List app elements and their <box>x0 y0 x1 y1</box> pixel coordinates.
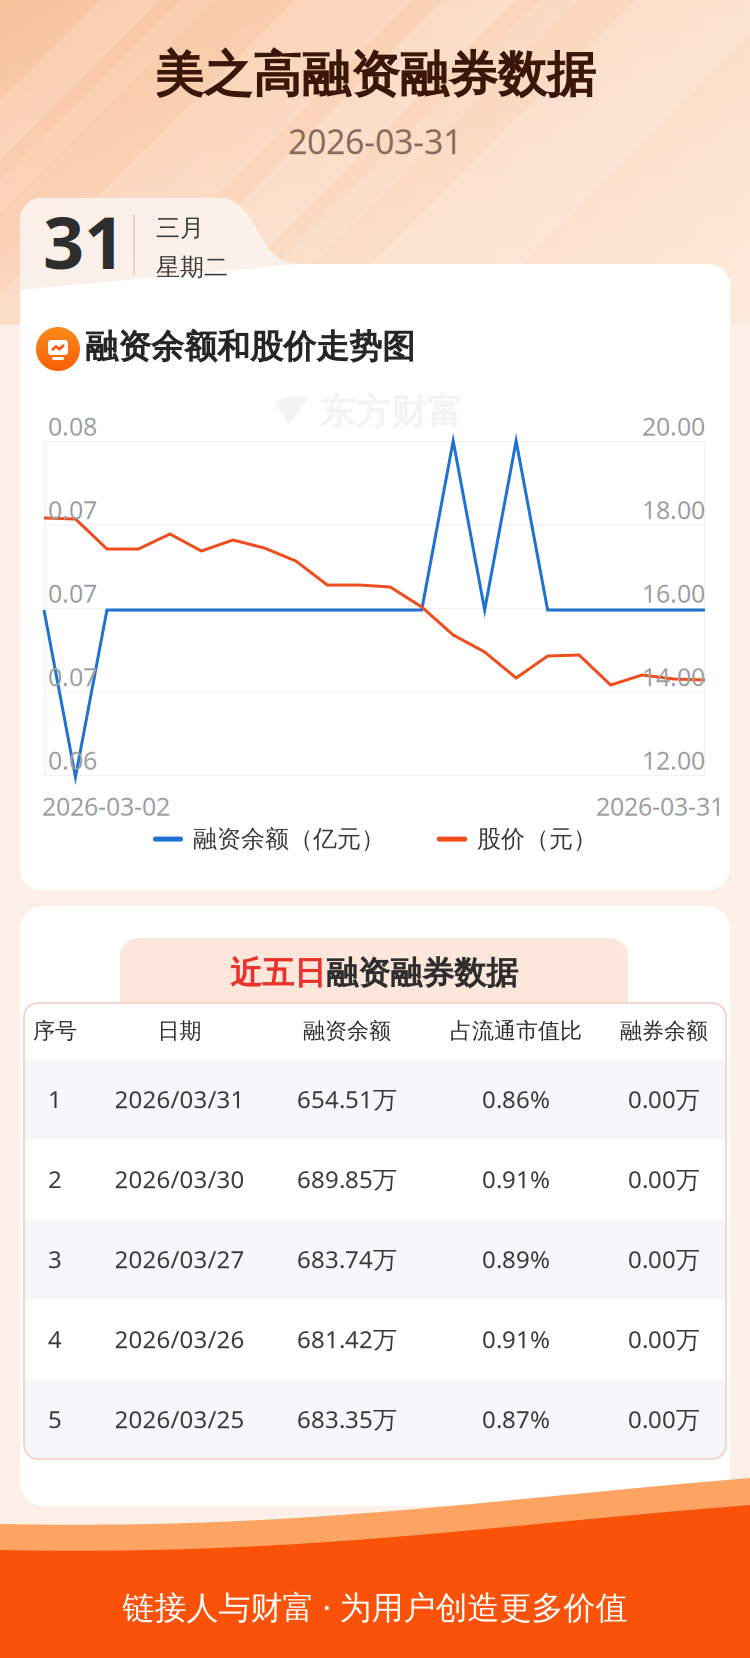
staticText: 日期 <box>157 1017 201 1045</box>
staticText: 683.35万 <box>297 1403 397 1435</box>
staticText: 融资余额 <box>303 1017 391 1045</box>
staticText: 0.06 <box>48 743 97 777</box>
staticText: 5 <box>48 1403 62 1435</box>
staticText: 0.08 <box>48 409 97 443</box>
staticText: 0.87% <box>482 1403 550 1435</box>
staticText: 683.74万 <box>297 1243 397 1275</box>
staticText: 融资融券数据 <box>326 953 518 993</box>
staticText: 融资余额和股价走势图 <box>85 326 415 368</box>
staticText: 融资余额（亿元） <box>193 824 385 854</box>
staticText: 18.00 <box>642 492 705 526</box>
staticText: 20.00 <box>642 409 705 443</box>
staticText: 0.00万 <box>628 1243 700 1275</box>
staticText: 0.00万 <box>628 1323 700 1355</box>
staticText: 美之高融资融券数据 <box>154 44 595 106</box>
staticText: 2026-03-31 <box>288 118 462 164</box>
staticText: 链接人与财富 · 为用户创造更多价值 <box>122 1585 627 1629</box>
staticText: 近五日 <box>230 953 326 993</box>
staticText: 0.00万 <box>628 1403 700 1435</box>
staticText: 14.00 <box>642 659 705 693</box>
staticText: 12.00 <box>642 743 705 777</box>
staticText: 0.07 <box>48 659 97 693</box>
staticText: 2026/03/30 <box>114 1163 244 1195</box>
staticText: 0.00万 <box>628 1083 700 1115</box>
staticText: 2026/03/31 <box>114 1083 244 1115</box>
staticText: 星期二 <box>156 252 228 282</box>
staticText: 4 <box>48 1323 62 1355</box>
staticText: 2026/03/25 <box>114 1403 244 1435</box>
staticText: 2026-03-02 <box>42 789 170 823</box>
staticText: 654.51万 <box>297 1083 397 1115</box>
staticText: 序号 <box>33 1017 77 1045</box>
staticText: 2026/03/26 <box>114 1323 244 1355</box>
staticText: 1 <box>48 1083 62 1115</box>
staticText: 0.00万 <box>628 1163 700 1195</box>
staticText: 0.07 <box>48 576 97 610</box>
staticText: 2026-03-31 <box>596 789 724 823</box>
staticText: 3 <box>48 1243 62 1275</box>
staticText: 0.91% <box>482 1163 550 1195</box>
staticText: 681.42万 <box>297 1323 397 1355</box>
staticText: 689.85万 <box>297 1163 397 1195</box>
staticText: 2026/03/27 <box>114 1243 244 1275</box>
staticText: 0.07 <box>48 492 97 526</box>
staticText: 融券余额 <box>620 1017 708 1045</box>
staticText: 三月 <box>156 213 204 243</box>
staticText: 2 <box>48 1163 62 1195</box>
staticText: 0.86% <box>482 1083 550 1115</box>
staticText: 占流通市值比 <box>450 1017 582 1045</box>
staticText: 16.00 <box>642 576 705 610</box>
staticText: 股价（元） <box>477 824 597 854</box>
staticText: 东方财富 <box>319 389 463 435</box>
staticText: 0.91% <box>482 1323 550 1355</box>
staticText: 0.89% <box>482 1243 550 1275</box>
staticText: 31 <box>43 192 125 290</box>
